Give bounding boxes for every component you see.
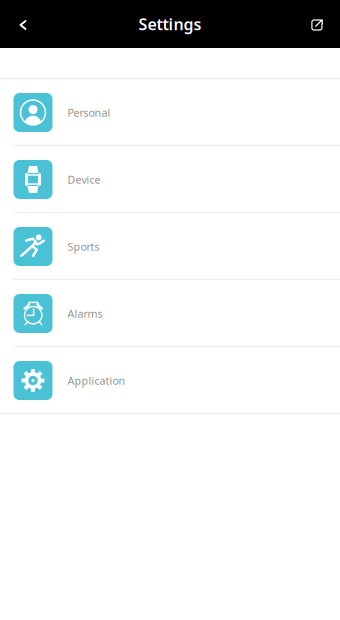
button[interactable]: Device bbox=[0, 146, 340, 213]
button[interactable]: Alarms bbox=[0, 280, 340, 347]
staticText: Device bbox=[67, 172, 100, 187]
staticText: Settings bbox=[138, 13, 201, 35]
button[interactable]: Share bbox=[298, 0, 340, 48]
staticText: Sports bbox=[67, 239, 99, 254]
staticText: Application bbox=[67, 373, 125, 388]
button[interactable]: Sports bbox=[0, 213, 340, 280]
button[interactable]: Application bbox=[0, 347, 340, 414]
button[interactable]: Back bbox=[0, 0, 44, 48]
button[interactable]: Personal bbox=[0, 79, 340, 146]
staticText: Alarms bbox=[67, 306, 102, 321]
staticText: Personal bbox=[67, 105, 110, 120]
